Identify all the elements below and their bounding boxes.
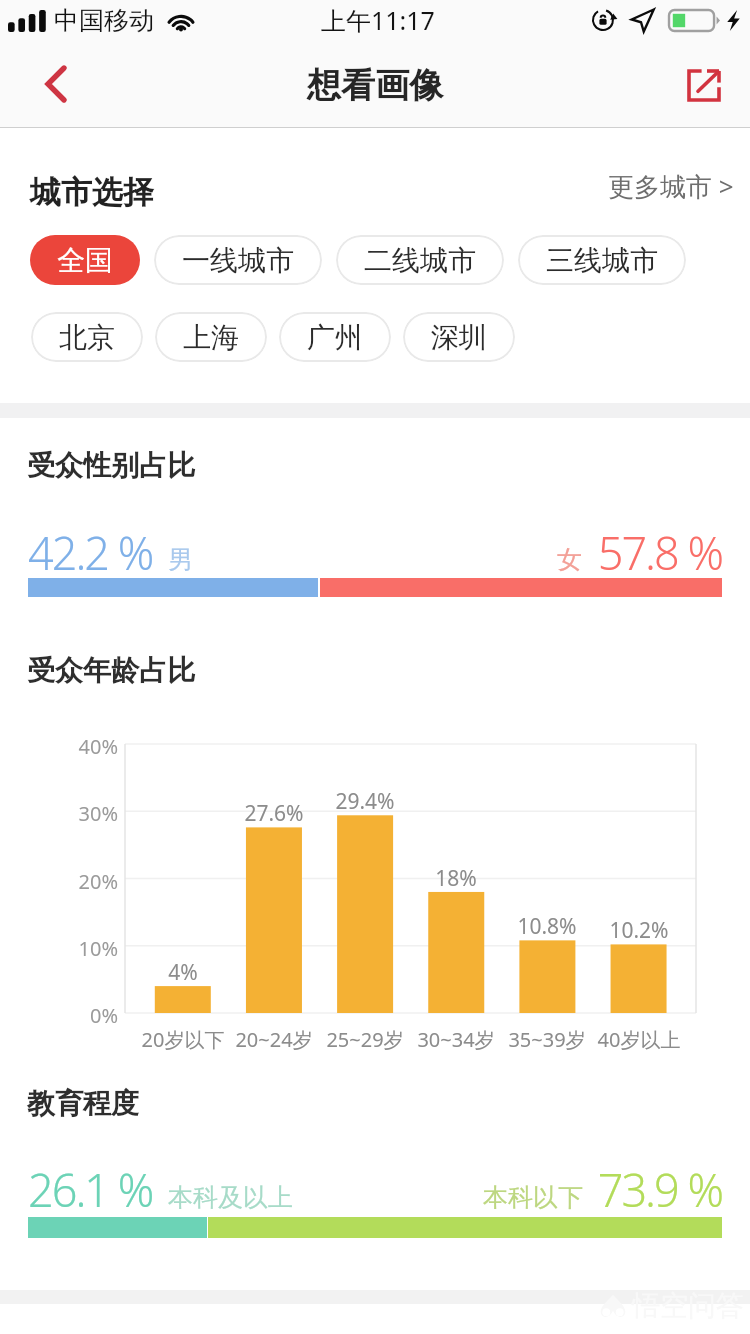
button[interactable]: 更多城市 > (598, 160, 744, 212)
staticText: 悟空问答 (632, 1288, 744, 1323)
staticText: 35~39岁 (487, 1026, 607, 1053)
staticText: 深圳 (431, 320, 487, 355)
button[interactable]: 三线城市 (518, 235, 686, 285)
staticText: 女 (400, 544, 582, 575)
staticText: 30~34岁 (396, 1026, 516, 1053)
staticText: 广州 (307, 320, 363, 355)
staticText: 城市选择 (30, 173, 154, 212)
staticText: 20~24岁 (214, 1026, 334, 1053)
staticText: 42.2 % (28, 522, 153, 583)
button[interactable]: 二线城市 (336, 235, 504, 285)
staticText: 中国移动 (54, 5, 154, 36)
button[interactable]: 全国 (30, 235, 140, 285)
staticText: 本科以下 (330, 1182, 583, 1213)
staticText: 40% (58, 733, 118, 760)
staticText: 40岁以上 (579, 1026, 699, 1053)
staticText: 全国 (57, 243, 113, 278)
staticText: 27.6% (214, 799, 334, 828)
staticText: 10.2% (579, 916, 699, 945)
staticText: 25~29岁 (305, 1026, 425, 1053)
staticText: 73.9 % (422, 1159, 722, 1220)
staticText: 18% (396, 864, 516, 893)
staticText: 一线城市 (182, 243, 294, 278)
staticText: 4% (123, 958, 243, 987)
staticText: 受众性别占比 (27, 448, 195, 483)
button[interactable]: Back (0, 50, 110, 128)
staticText: 20% (58, 868, 118, 895)
button[interactable]: Share (658, 50, 750, 128)
button[interactable]: 广州 (279, 312, 391, 362)
staticText: 受众年龄占比 (27, 653, 195, 688)
staticText: 10% (58, 935, 118, 962)
staticText: 上海 (183, 320, 239, 355)
staticText: 上午11:17 (321, 3, 435, 37)
staticText: 29.4% (305, 787, 425, 816)
staticText: 二线城市 (364, 243, 476, 278)
staticText: 20岁以下 (123, 1026, 243, 1053)
button[interactable]: 深圳 (403, 312, 515, 362)
staticText: 想看画像 (307, 64, 443, 107)
staticText: 更多城市 > (608, 168, 734, 204)
button[interactable]: 一线城市 (154, 235, 322, 285)
staticText: 男 (168, 544, 193, 575)
staticText: 26.1 % (28, 1159, 153, 1220)
staticText: 0% (58, 1002, 118, 1029)
staticText: 30% (58, 800, 118, 827)
staticText: 北京 (59, 320, 115, 355)
staticText: 本科及以上 (168, 1182, 293, 1213)
staticText: 57.8 % (422, 522, 722, 583)
staticText: 三线城市 (546, 243, 658, 278)
button[interactable]: 北京 (31, 312, 143, 362)
button[interactable]: 上海 (155, 312, 267, 362)
staticText: 10.8% (487, 912, 607, 941)
staticText: 教育程度 (27, 1086, 139, 1121)
